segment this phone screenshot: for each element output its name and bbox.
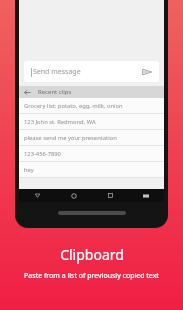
staticText: 123-456-7890 [24,150,61,158]
staticText: Paste from a list of previously copied t… [24,271,159,281]
staticText: hey [24,166,34,174]
button[interactable]: Back [19,189,56,202]
button[interactable]: Recent apps [92,189,128,202]
button[interactable]: please send me your presentation [19,130,164,146]
button[interactable]: 123 John st. Redmond, WA [19,114,164,130]
button[interactable]: Home [56,189,92,202]
button[interactable]: Switch keyboard [128,189,164,202]
staticText: 123 John st. Redmond, WA [24,118,96,126]
staticText: please send me your presentation [24,134,117,142]
staticText: Send message [33,67,81,77]
staticText: Clipboard [60,245,124,264]
button[interactable]: Recent clips [19,86,164,98]
button[interactable]: Grocery list: potato, egg, milk, onion [19,98,164,114]
button[interactable]: hey [19,162,164,178]
button[interactable]: Send message [24,61,159,82]
staticText: Grocery list: potato, egg, milk, onion [24,102,123,110]
button[interactable]: 123-456-7890 [19,146,164,162]
staticText: Recent clips [38,88,72,96]
